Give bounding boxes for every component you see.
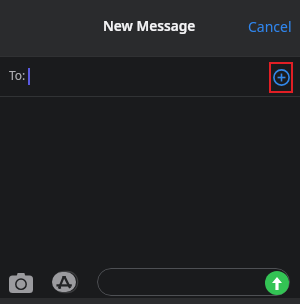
staticText: New Message xyxy=(103,16,196,35)
button[interactable]: Cancel xyxy=(238,11,300,42)
button[interactable]: Camera xyxy=(4,269,37,297)
button[interactable]: Apps xyxy=(50,268,77,295)
staticText: Cancel xyxy=(248,17,292,36)
button[interactable]: Message xyxy=(97,268,290,296)
button[interactable]: Add contact xyxy=(269,62,293,93)
staticText: To: xyxy=(9,67,26,83)
button[interactable]: To: xyxy=(0,58,260,97)
button[interactable]: Send xyxy=(265,271,289,295)
